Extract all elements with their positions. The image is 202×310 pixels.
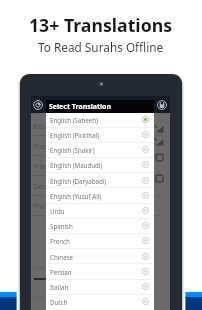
staticText: Font Size [33,262,64,272]
staticText: English (Yusuf Ali) [50,192,102,200]
staticText: Dutch [50,298,68,306]
button[interactable]: Bookmarks [157,100,167,110]
button[interactable]: Back [33,100,43,110]
button[interactable]: Font Size [33,260,172,274]
button[interactable]: English (Maududi) [46,157,154,172]
staticText: Chinese [50,253,74,261]
staticText: Font Style [33,292,67,302]
staticText: Urdu [50,207,65,215]
button[interactable]: Toggle [155,174,165,184]
button[interactable]: Toggle [155,153,165,163]
staticText: Description [33,181,72,191]
button[interactable]: Theme [32,196,171,216]
button[interactable]: English (Daryabadi) [46,173,154,188]
button[interactable]: Translation [32,136,171,156]
staticText: English (Daryabadi) [50,177,107,185]
button[interactable]: English (Saheeh) [46,112,154,127]
staticText: Transliteration [33,161,82,171]
button[interactable]: English (Shakir) [46,142,154,157]
staticText: English (Shakir) [50,146,95,154]
button[interactable]: Dutch [46,294,154,309]
staticText: Spanish [50,222,73,230]
staticText: Select Translation [49,102,112,112]
staticText: 13+ Translations [29,13,173,37]
staticText: French [50,237,70,245]
button[interactable]: Urdu [46,203,154,218]
button[interactable]: Italian [46,279,154,294]
staticText: English (Maududi) [50,161,103,169]
button[interactable]: French [46,233,154,248]
button[interactable]: Transliteration [32,156,171,176]
button[interactable]: English (Yusuf Ali) [46,188,154,203]
button[interactable]: Chinese [46,249,154,264]
staticText: Theme [33,201,57,211]
staticText: Persian [50,268,72,276]
button[interactable]: English (Pickthal) [46,127,154,142]
staticText: Recitation [33,121,67,131]
button[interactable]: Spanish [46,218,154,233]
button[interactable]: Persian [46,264,154,279]
staticText: Italian [50,283,69,291]
button[interactable]: Recitation [32,116,171,136]
staticText: English (Pickthal) [50,131,100,139]
staticText: English (Saheeh) [50,116,98,124]
staticText: To Read Surahs Offline [38,39,164,55]
button[interactable]: Font Style [33,290,172,304]
button[interactable]: Description [32,176,171,196]
staticText: Translation [33,141,71,151]
